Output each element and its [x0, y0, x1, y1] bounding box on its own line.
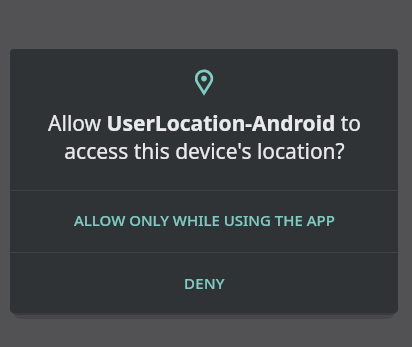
staticText: Allow UserLocation-Android to access thi… — [48, 109, 361, 165]
staticText: DENY — [184, 273, 225, 293]
button[interactable]: DENY — [10, 253, 398, 313]
staticText: ALLOW ONLY WHILE USING THE APP — [74, 210, 335, 230]
button[interactable]: ALLOW ONLY WHILE USING THE APP — [10, 191, 398, 252]
